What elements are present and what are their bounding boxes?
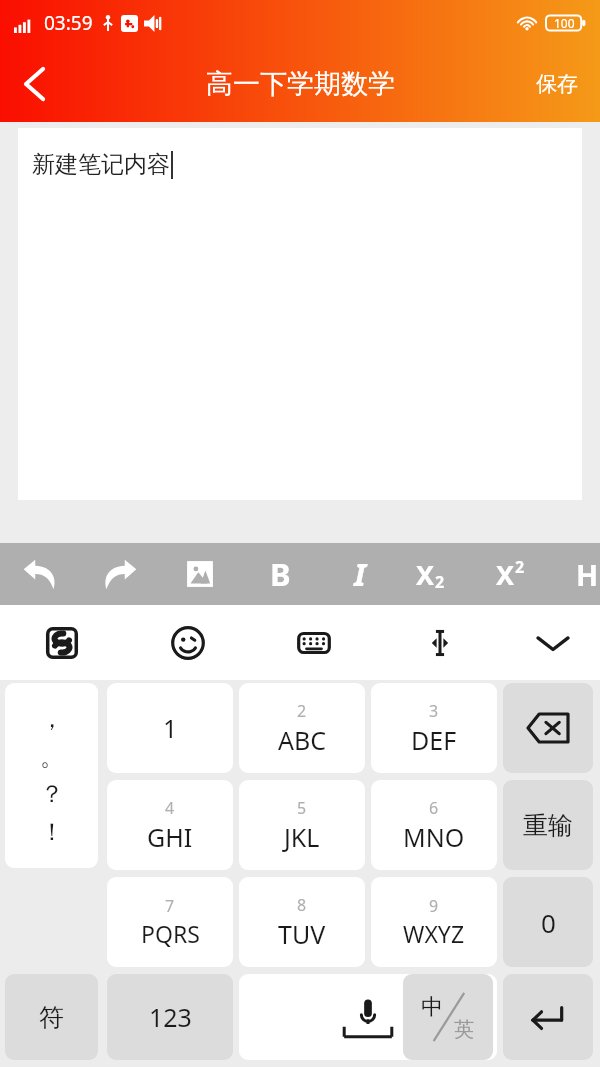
staticText: MNO: [403, 820, 465, 854]
button[interactable]: Keyboard layout: [288, 617, 340, 669]
button[interactable]: X: [404, 548, 456, 600]
staticText: ABC: [278, 723, 327, 757]
button[interactable]: Redo: [94, 548, 146, 600]
staticText: 1: [163, 711, 178, 745]
button[interactable]: Undo: [14, 548, 66, 600]
button[interactable]: H: [576, 554, 600, 594]
button[interactable]: 8: [239, 877, 365, 967]
other: Enter: [503, 974, 593, 1060]
button[interactable]: Hide keyboard: [527, 617, 579, 669]
staticText: ？: [40, 779, 64, 809]
staticText: 高一下学期数学: [206, 67, 395, 101]
button[interactable]: Back: [6, 56, 62, 112]
staticText: 中: [421, 993, 443, 1021]
button[interactable]: 6: [371, 780, 497, 870]
staticText: TUV: [278, 917, 326, 951]
button[interactable]: 7: [107, 877, 233, 967]
staticText: 3: [429, 700, 439, 722]
button[interactable]: Cursor move: [414, 617, 466, 669]
staticText: X: [496, 556, 515, 593]
button[interactable]: 4: [107, 780, 233, 870]
staticText: WXYZ: [403, 918, 465, 949]
button[interactable]: ，: [5, 683, 98, 868]
staticText: 符: [39, 1002, 64, 1033]
staticText: 6: [429, 797, 439, 819]
button[interactable]: Sogou input: [36, 617, 88, 669]
staticText: 2: [435, 571, 445, 593]
button[interactable]: Emoji: [162, 617, 214, 669]
button[interactable]: 中: [403, 974, 493, 1060]
button[interactable]: 5: [239, 780, 365, 870]
button[interactable]: X: [484, 548, 536, 600]
staticText: ，: [40, 704, 64, 734]
staticText: ！: [40, 817, 64, 847]
staticText: B: [270, 553, 291, 595]
staticText: 0: [541, 905, 556, 940]
button[interactable]: 3: [371, 683, 497, 773]
staticText: H: [576, 555, 599, 594]
button[interactable]: 保存: [524, 61, 590, 107]
button[interactable]: 123: [107, 974, 233, 1060]
staticText: 03:59: [44, 10, 93, 36]
button[interactable]: B: [254, 548, 306, 600]
staticText: GHI: [147, 820, 193, 854]
staticText: JKL: [284, 820, 320, 854]
staticText: 2: [297, 700, 307, 722]
button[interactable]: 符: [5, 974, 98, 1060]
button[interactable]: 9: [371, 877, 497, 967]
staticText: X: [416, 556, 435, 593]
staticText: 2: [515, 556, 525, 578]
button[interactable]: Insert image: [174, 548, 226, 600]
staticText: 123: [149, 1000, 192, 1034]
button[interactable]: 2: [239, 683, 365, 773]
staticText: DEF: [411, 723, 457, 757]
button[interactable]: 0: [503, 877, 593, 967]
staticText: 8: [297, 894, 307, 916]
other: Space: [239, 974, 497, 1060]
button[interactable]: Space: [239, 974, 497, 1060]
staticText: 重输: [523, 810, 573, 841]
other: Backspace: [503, 683, 593, 773]
staticText: 5: [297, 797, 307, 819]
staticText: 英: [454, 1017, 474, 1042]
staticText: 7: [165, 895, 175, 917]
staticText: PQRS: [141, 918, 200, 949]
staticText: 9: [429, 895, 439, 917]
button[interactable]: 1: [107, 683, 233, 773]
staticText: 4: [165, 797, 175, 819]
staticText: 保存: [536, 71, 578, 97]
staticText: 100: [554, 15, 575, 31]
staticText: 。: [40, 742, 64, 772]
button[interactable]: Backspace: [503, 683, 593, 773]
button[interactable]: 重输: [503, 780, 593, 870]
button[interactable]: 新建笔记内容: [18, 128, 582, 500]
staticText: I: [354, 553, 366, 595]
staticText: 新建笔记内容: [32, 150, 170, 179]
button[interactable]: I: [334, 548, 386, 600]
button[interactable]: Enter: [503, 974, 593, 1060]
